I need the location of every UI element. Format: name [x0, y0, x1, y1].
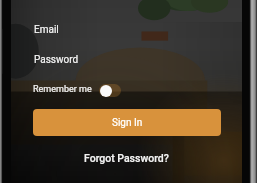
staticText: Forgot Password?: [84, 152, 169, 164]
staticText: Email: [34, 24, 59, 36]
button[interactable]: Sign In: [33, 109, 221, 136]
staticText: Password: [34, 54, 79, 66]
button[interactable]: Remember me switch: [99, 84, 121, 97]
button[interactable]: Forgot Password?: [84, 152, 169, 164]
staticText: Remember me: [33, 84, 92, 95]
staticText: Sign In: [112, 117, 143, 129]
